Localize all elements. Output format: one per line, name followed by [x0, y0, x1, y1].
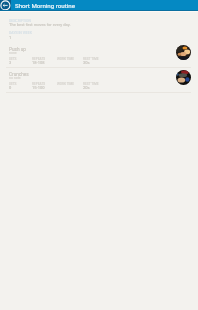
staticText: 1 — [9, 35, 12, 40]
staticText: no note — [9, 76, 21, 80]
staticText: 30s — [83, 60, 90, 65]
staticText: 18-108 — [32, 60, 45, 65]
staticText: none — [9, 51, 17, 55]
staticText: 3 — [9, 60, 12, 65]
staticText: REST TIME — [83, 82, 99, 86]
staticText: Short Morning routine — [15, 2, 75, 9]
staticText: WORK TIME — [57, 57, 75, 61]
button[interactable]: Back — [0, 0, 11, 11]
staticText: WORK TIME — [57, 82, 75, 86]
staticText: Push up — [9, 47, 26, 53]
staticText: REST TIME — [83, 57, 99, 61]
staticText: SETS — [9, 57, 17, 61]
staticText: The best first moves for every day. — [9, 22, 71, 27]
staticText: DESCRIPTION — [9, 19, 31, 23]
staticText: 0 — [9, 85, 12, 90]
button[interactable]: Crunches — [0, 67, 198, 93]
staticText: REPEATS — [32, 82, 46, 86]
staticText: 15-100 — [32, 85, 45, 90]
staticText: 20s — [83, 85, 90, 90]
staticText: REPEATS — [32, 57, 46, 61]
button[interactable]: Push up — [0, 42, 198, 67]
staticText: SETS — [9, 82, 17, 86]
staticText: DAYS IN WEEK — [9, 31, 33, 35]
staticText: Crunches — [9, 72, 29, 78]
